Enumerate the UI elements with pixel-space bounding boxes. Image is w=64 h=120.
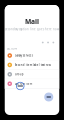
staticText: secondary caption line goes here now <box>5 27 59 31</box>
staticText: Last row item <box>15 82 32 85</box>
staticText: SECTION <box>7 47 17 50</box>
button[interactable]: More <box>52 42 54 43</box>
staticText: Mail <box>25 17 39 26</box>
staticText: Galaxy Services <box>15 54 33 57</box>
staticText: Group <box>15 73 24 76</box>
button[interactable]: Compose <box>44 92 53 101</box>
staticText: Second item label text row <box>15 63 51 67</box>
button[interactable]: Galaxy Services <box>5 51 59 60</box>
button[interactable]: Sort <box>42 42 44 43</box>
button[interactable]: Group <box>5 70 59 79</box>
button[interactable]: Second item label text row <box>5 60 59 70</box>
button[interactable]: Last row item <box>5 79 59 89</box>
button[interactable]: Sync <box>16 81 25 90</box>
